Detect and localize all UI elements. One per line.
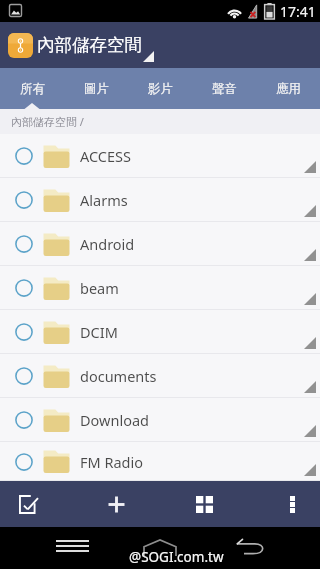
button[interactable]: Android [0, 222, 320, 266]
staticText: 17:41 [280, 2, 316, 21]
button[interactable]: Select all [6, 482, 50, 526]
staticText: Alarms [80, 190, 128, 210]
staticText: DCIM [80, 322, 118, 342]
button[interactable]: Home [138, 525, 182, 567]
button[interactable]: Storage [8, 33, 33, 58]
staticText: Download [80, 410, 149, 430]
staticText: 影片 [148, 81, 173, 97]
staticText: 聲音 [212, 81, 237, 97]
staticText: @SOGI.com.tw [129, 548, 224, 566]
staticText: 圖片 [84, 81, 109, 97]
button[interactable]: ACCESS [0, 134, 320, 178]
button[interactable]: Download [0, 398, 320, 442]
button[interactable]: Back [228, 526, 272, 568]
staticText: 應用 [276, 81, 301, 97]
staticText: ACCESS [80, 146, 131, 166]
button[interactable]: Add [94, 482, 138, 526]
button[interactable]: Grid view [182, 482, 226, 526]
button[interactable]: documents [0, 354, 320, 398]
button[interactable]: DCIM [0, 310, 320, 354]
button[interactable]: FM Radio [0, 442, 320, 481]
button[interactable]: Alarms [0, 178, 320, 222]
button[interactable]: 影片 [128, 68, 192, 109]
button[interactable]: beam [0, 266, 320, 310]
button[interactable]: 應用 [256, 68, 320, 109]
button[interactable]: 所有 [0, 68, 64, 109]
staticText: 內部儲存空間 [37, 34, 142, 56]
staticText: 所有 [20, 81, 45, 97]
staticText: FM Radio [80, 452, 144, 472]
staticText: Android [80, 234, 135, 254]
button[interactable]: 圖片 [64, 68, 128, 109]
staticText: beam [80, 278, 119, 298]
button[interactable]: More options [270, 482, 314, 526]
button[interactable]: 聲音 [192, 68, 256, 109]
staticText: 內部儲存空間 / [11, 114, 84, 129]
staticText: documents [80, 366, 157, 386]
button[interactable]: Recent apps [50, 525, 94, 567]
